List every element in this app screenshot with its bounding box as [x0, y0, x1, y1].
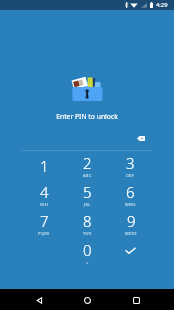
staticText: 7 [40, 211, 49, 231]
button[interactable]: Back [29, 290, 49, 310]
staticText: 6 [126, 182, 135, 202]
staticText: + [86, 260, 89, 265]
staticText: 1 [40, 156, 49, 176]
staticText: ABC [83, 173, 92, 178]
button[interactable]: 2 [66, 151, 109, 180]
staticText: GHI [40, 202, 49, 207]
button[interactable]: Backspace [130, 128, 151, 149]
staticText: WXYZ [125, 231, 137, 236]
button[interactable]: Confirm PIN [109, 238, 152, 267]
staticText: TUV [83, 231, 92, 236]
staticText: 3 [126, 153, 135, 173]
button[interactable]: 6 [109, 180, 152, 209]
staticText: MNO [125, 202, 136, 207]
staticText: 8 [83, 211, 92, 231]
button[interactable]: 0 [66, 238, 109, 267]
staticText: 4 [40, 182, 49, 202]
staticText: 2 [83, 153, 92, 173]
staticText: DEF [126, 173, 135, 178]
button[interactable]: 5 [66, 180, 109, 209]
staticText: PQRS [38, 231, 50, 236]
staticText: JKL [84, 202, 91, 207]
staticText: Enter PIN to unlock [0, 112, 174, 121]
button[interactable]: 3 [109, 151, 152, 180]
button[interactable]: 9 [109, 209, 152, 238]
button[interactable]: Recent apps [126, 290, 146, 310]
staticText: 0 [83, 240, 92, 260]
staticText: 4:29 [156, 1, 168, 9]
button[interactable]: 7 [22, 209, 66, 238]
button[interactable]: 8 [66, 209, 109, 238]
button[interactable]: Home [77, 290, 97, 310]
staticText: 5 [83, 182, 92, 202]
button[interactable]: 1 [22, 151, 66, 180]
staticText: 9 [127, 211, 136, 231]
button[interactable]: 4 [22, 180, 66, 209]
